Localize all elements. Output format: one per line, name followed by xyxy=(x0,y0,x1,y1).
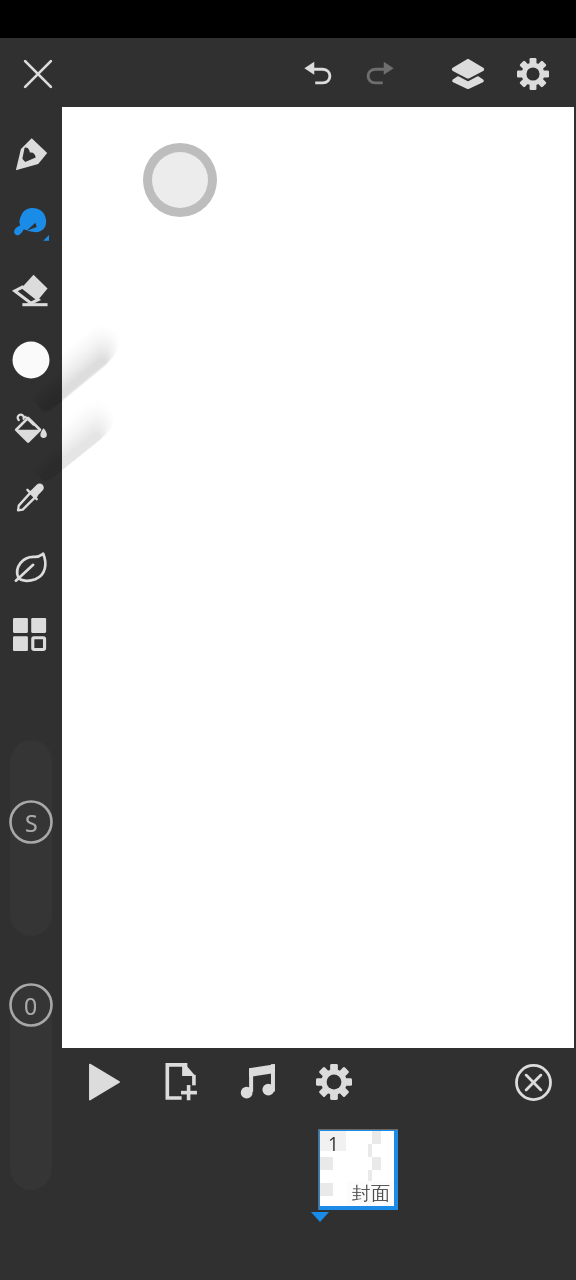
staticText: S xyxy=(25,807,38,838)
button[interactable]: Brush xyxy=(0,191,62,253)
button[interactable]: Brush size xyxy=(10,740,52,936)
button[interactable]: Play xyxy=(78,1056,130,1108)
button[interactable]: Redo xyxy=(352,48,404,100)
button[interactable]: Close xyxy=(12,48,64,100)
button[interactable]: Color xyxy=(0,329,62,391)
staticText: 0 xyxy=(24,990,38,1021)
button[interactable]: Color picker xyxy=(0,466,62,528)
button[interactable]: Fill xyxy=(0,398,62,460)
button[interactable]: Opacity slider xyxy=(10,985,52,1190)
button[interactable]: Smudge xyxy=(0,536,62,598)
button[interactable]: Layers xyxy=(442,48,494,100)
button[interactable]: Frame settings xyxy=(308,1056,360,1108)
button[interactable]: Opacity xyxy=(9,983,53,1027)
button[interactable]: Settings xyxy=(507,48,559,100)
button[interactable]: More tools xyxy=(0,605,62,667)
button[interactable]: Pen xyxy=(0,123,62,185)
button[interactable]: Audio xyxy=(233,1056,285,1108)
button[interactable]: Frame 1 cover xyxy=(318,1129,398,1210)
button[interactable]: Add frame xyxy=(155,1056,207,1108)
staticText: 封面 xyxy=(352,1182,390,1206)
button[interactable]: Eraser xyxy=(0,260,62,322)
staticText: 1 xyxy=(328,1131,339,1151)
button[interactable]: Close timeline xyxy=(507,1056,559,1108)
button[interactable]: Undo xyxy=(294,48,346,100)
